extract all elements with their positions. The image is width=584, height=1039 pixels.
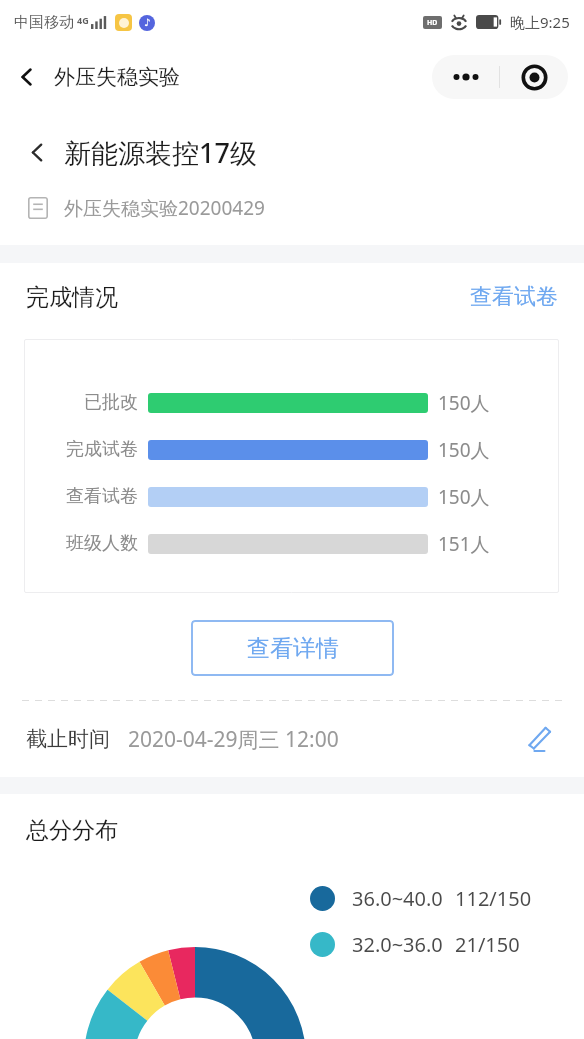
button[interactable]: 查看详情 [191,620,394,676]
staticText: ♪ [144,17,151,29]
staticText: 21/150 [455,931,520,958]
staticText: 查看试卷 [470,283,558,311]
staticText: 外压失稳实验20200429 [64,195,265,221]
staticText: 完成试卷 [66,438,138,461]
staticText: 151人 [438,531,490,557]
staticText: 外压失稳实验 [54,64,180,90]
staticText: 2020-04-29周三 12:00 [128,725,339,754]
button[interactable]: 查看试卷 [468,279,560,315]
staticText: 新能源装控17级 [64,134,257,171]
button[interactable]: 外压失稳实验 [0,56,190,98]
staticText: 32.0~36.0 [352,931,443,958]
staticText: 总分分布 [26,816,118,845]
staticText: 晚上9:25 [510,12,570,32]
staticText: 截止时间 [26,726,110,752]
button[interactable]: 新能源装控17级 [0,130,584,175]
button[interactable]: 截止时间 [0,721,584,757]
staticText: 查看详情 [247,634,339,663]
staticText: 150人 [438,390,490,416]
staticText: 中国移动 [14,13,74,32]
staticText: 112/150 [455,885,532,912]
staticText: 150人 [438,484,490,510]
staticText: 查看试卷 [66,485,138,508]
button[interactable]: Edit deadline [522,721,558,757]
staticText: 36.0~40.0 [352,885,443,912]
staticText: 4G [77,14,89,26]
button[interactable]: More [432,55,499,99]
button[interactable]: Close [500,55,568,99]
staticText: 班级人数 [66,532,138,555]
staticText: 150人 [438,437,490,463]
staticText: 已批改 [84,391,138,414]
staticText: HD [427,18,438,28]
staticText: 完成情况 [26,283,118,312]
